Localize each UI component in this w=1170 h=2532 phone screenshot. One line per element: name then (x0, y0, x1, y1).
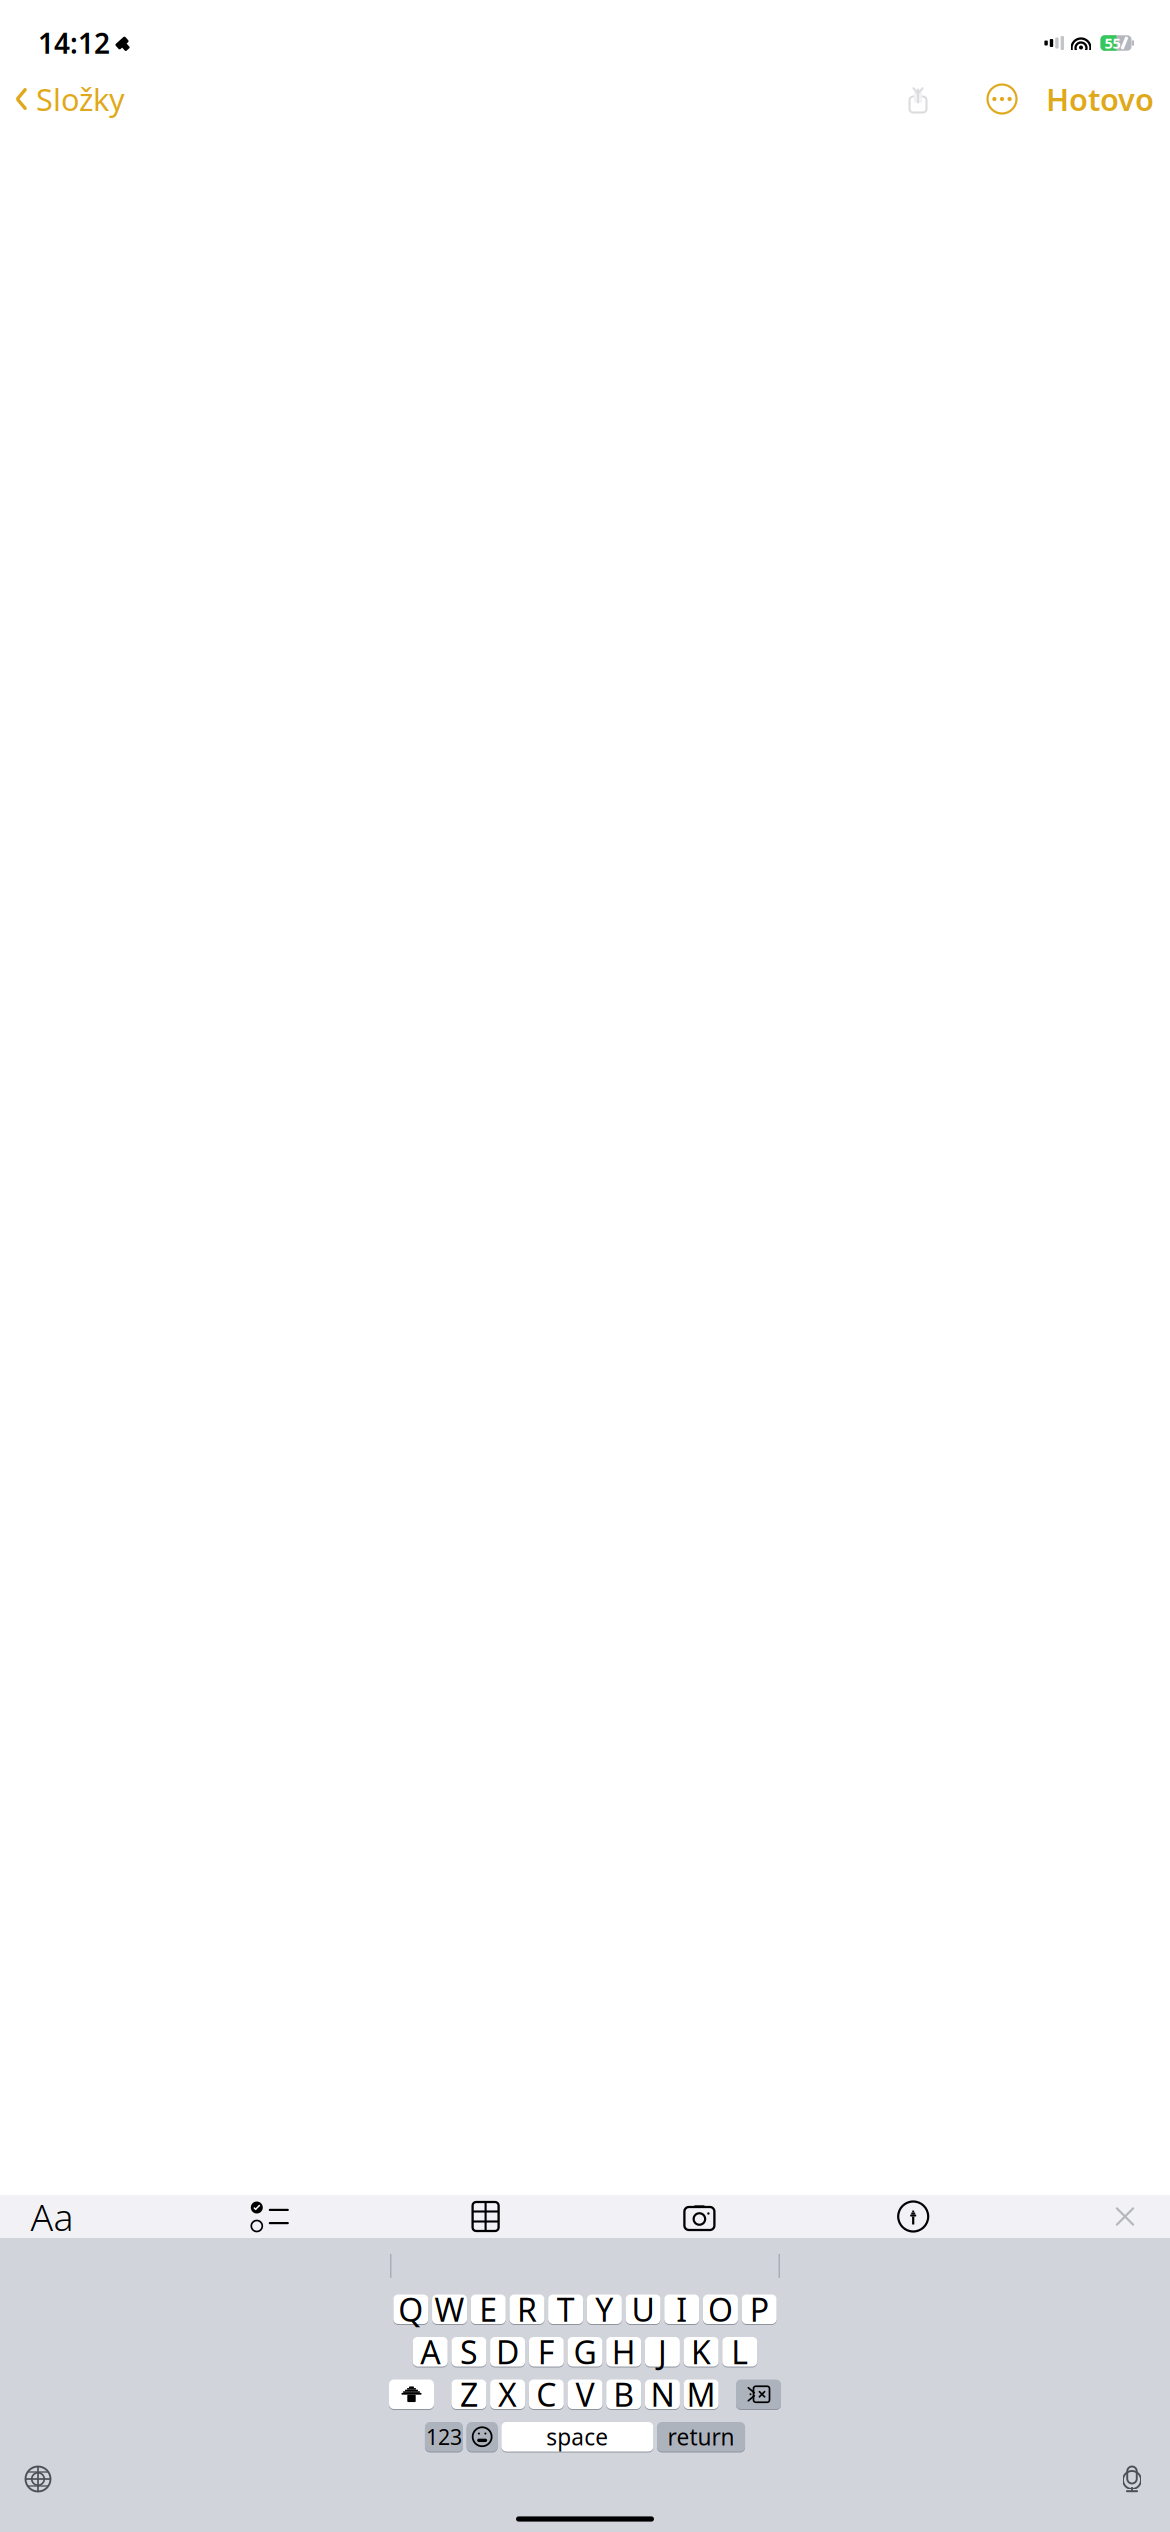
staticText: C (536, 2373, 556, 2415)
staticText: Z (460, 2373, 478, 2415)
button[interactable]: space (501, 2421, 653, 2452)
button[interactable]: M (684, 2379, 719, 2409)
staticText: S (460, 2330, 478, 2373)
button[interactable]: L (722, 2336, 757, 2367)
button[interactable]: Sdílet (898, 79, 938, 119)
button[interactable]: J (645, 2336, 680, 2367)
button[interactable]: Shift (389, 2379, 434, 2409)
button[interactable]: H (606, 2336, 641, 2367)
button[interactable]: Další klávesnice (15, 2456, 61, 2502)
staticText: J (658, 2330, 667, 2373)
button[interactable]: I (664, 2294, 699, 2324)
staticText: V (575, 2373, 594, 2415)
button[interactable]: B (606, 2379, 641, 2409)
staticText: 55 (1104, 33, 1120, 53)
button[interactable]: Kontrolní seznam (239, 2194, 301, 2238)
button[interactable]: 123 (425, 2421, 463, 2452)
button[interactable]: Kamera (670, 2194, 728, 2238)
staticText: B (613, 2373, 634, 2415)
staticText: Hotovo (1046, 79, 1154, 119)
button[interactable]: W (432, 2294, 467, 2324)
staticText: Aa (30, 2192, 73, 2241)
button[interactable]: Emodži (467, 2421, 498, 2452)
staticText: E (479, 2288, 497, 2330)
staticText: F (538, 2330, 555, 2373)
button[interactable]: Další (982, 79, 1022, 119)
button[interactable]: Q (393, 2294, 428, 2324)
staticText: I (676, 2288, 687, 2330)
button[interactable]: G (567, 2336, 602, 2367)
button[interactable]: Y (587, 2294, 622, 2324)
staticText: R (517, 2288, 537, 2330)
staticText: M (687, 2373, 716, 2415)
staticText: N (650, 2373, 674, 2415)
staticText: Y (595, 2288, 613, 2330)
button[interactable]: T (548, 2294, 583, 2324)
button[interactable]: Složky (0, 73, 125, 125)
staticText: Složky (36, 79, 125, 119)
button[interactable]: Smazat (736, 2379, 781, 2409)
staticText: return (667, 2422, 734, 2452)
button[interactable]: Značky (885, 2194, 941, 2238)
button[interactable]: S (451, 2336, 486, 2367)
button[interactable]: O (703, 2294, 738, 2324)
button[interactable]: N (645, 2379, 680, 2409)
button[interactable]: V (567, 2379, 602, 2409)
button[interactable]: Formát (22, 2194, 82, 2238)
button[interactable]: R (509, 2294, 544, 2324)
staticText: G (573, 2330, 596, 2373)
button[interactable]: C (529, 2379, 564, 2409)
button[interactable]: F (529, 2336, 564, 2367)
staticText: L (731, 2330, 748, 2373)
staticText: H (612, 2330, 636, 2373)
button[interactable]: A (413, 2336, 448, 2367)
button[interactable]: D (490, 2336, 525, 2367)
button[interactable]: X (490, 2379, 525, 2409)
staticText: D (496, 2330, 519, 2373)
button[interactable]: K (684, 2336, 719, 2367)
staticText: T (557, 2288, 575, 2330)
staticText: X (498, 2373, 517, 2415)
button[interactable]: Diktování (1109, 2456, 1155, 2502)
button[interactable]: E (471, 2294, 506, 2324)
button[interactable]: Z (451, 2379, 486, 2409)
staticText: space (546, 2422, 608, 2452)
staticText: 14:12 (38, 24, 110, 62)
staticText: O (708, 2288, 733, 2330)
button[interactable]: Tabulka (458, 2194, 514, 2238)
staticText: W (435, 2288, 465, 2330)
staticText: Q (398, 2288, 423, 2330)
staticText: P (750, 2288, 769, 2330)
button[interactable]: Zavřít (1098, 2194, 1152, 2238)
button[interactable]: U (625, 2294, 660, 2324)
staticText: A (420, 2330, 440, 2373)
staticText: 123 (426, 2423, 462, 2451)
button[interactable]: Hotovo (1046, 73, 1170, 125)
button[interactable]: P (742, 2294, 777, 2324)
staticText: U (631, 2288, 654, 2330)
button[interactable]: return (657, 2421, 745, 2452)
staticText: K (691, 2330, 711, 2373)
